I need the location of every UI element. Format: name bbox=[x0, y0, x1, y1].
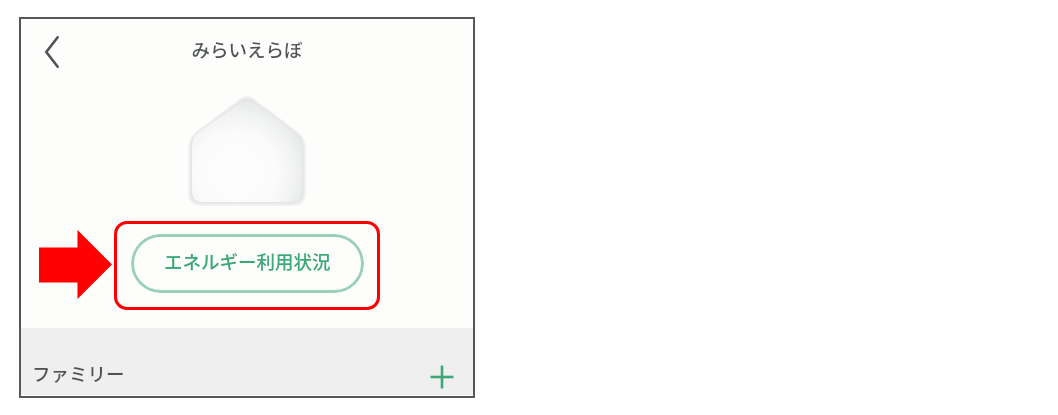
staticText: ファミリー bbox=[32, 360, 125, 387]
staticText: エネルギー利用状況 bbox=[164, 248, 331, 275]
staticText: みらいえらぼ bbox=[147, 36, 347, 63]
button[interactable]: Add family member bbox=[425, 360, 459, 394]
button[interactable]: エネルギー利用状況 bbox=[131, 234, 364, 293]
button[interactable]: Back bbox=[30, 30, 74, 74]
